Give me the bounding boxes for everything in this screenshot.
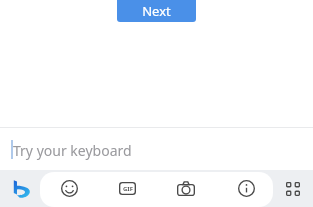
- button[interactable]: Emoji: [55, 170, 83, 207]
- staticText: Try your keyboard: [13, 141, 132, 160]
- button[interactable]: More options: [279, 170, 307, 207]
- button[interactable]: Next: [117, 0, 196, 22]
- button[interactable]: GIF: [113, 170, 141, 207]
- button[interactable]: Info: [232, 170, 260, 207]
- button[interactable]: Camera: [172, 170, 200, 207]
- button[interactable]: Try your keyboard: [0, 128, 313, 170]
- button[interactable]: Bing search: [6, 170, 35, 207]
- staticText: GIF: [123, 185, 133, 193]
- staticText: Next: [142, 2, 171, 20]
